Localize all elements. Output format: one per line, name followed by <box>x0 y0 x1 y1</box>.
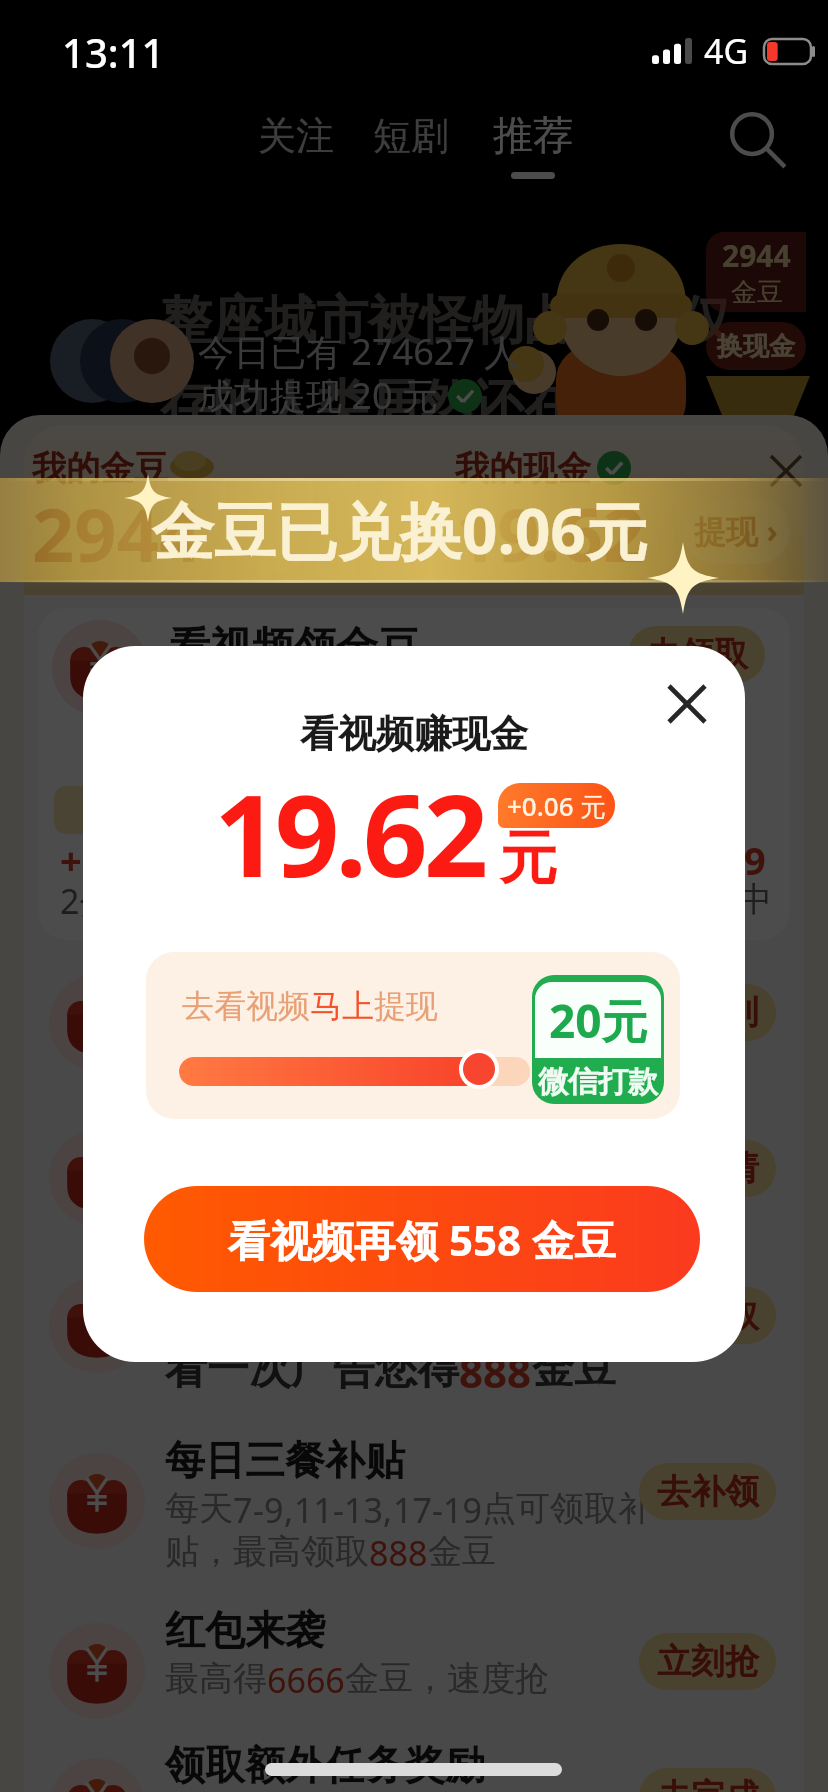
staticText: 13 <box>344 1487 383 1533</box>
staticText: , <box>383 1487 393 1533</box>
staticText: - <box>432 1487 443 1533</box>
staticText: 20元 <box>549 989 648 1052</box>
staticText: 6666 <box>267 1657 345 1703</box>
staticText: 7 <box>233 1487 253 1533</box>
button[interactable]: Close panel <box>754 439 804 503</box>
button[interactable]: 20元 <box>532 975 664 1104</box>
staticText: 金豆 <box>532 1343 616 1396</box>
staticText: 888 <box>459 1343 532 1400</box>
staticText: 2944 <box>722 235 791 276</box>
staticText: 提现 <box>374 986 438 1026</box>
button[interactable]: 去签到 <box>639 984 776 1041</box>
button[interactable]: 推荐 <box>493 110 573 179</box>
staticText: 连续签到可得更多奖励 <box>165 1008 505 1051</box>
button[interactable]: 去完成 <box>639 1768 776 1792</box>
staticText: 19 <box>443 1487 482 1533</box>
button[interactable]: 关注 <box>258 112 334 160</box>
staticText: 19.62 <box>455 483 646 584</box>
staticText: 去邀请 <box>657 1147 759 1190</box>
staticText: 每日三餐补贴 <box>165 1435 405 1485</box>
staticText: 整座城市被怪物占领，仅 <box>160 288 732 354</box>
staticText: 今日已有 274627 人 <box>198 327 521 376</box>
staticText: 贴，最高领取 <box>165 1530 369 1573</box>
staticText: 金豆已兑换0.06元 <box>152 488 648 573</box>
staticText: 短剧 <box>373 112 449 160</box>
staticText: 推荐 <box>493 110 573 160</box>
staticText: 换现金 <box>717 330 795 363</box>
staticText: 888 <box>369 1530 428 1576</box>
staticText: , <box>284 1487 294 1533</box>
staticText: 马上 <box>310 986 374 1026</box>
button[interactable]: 换现金 <box>706 322 806 370</box>
button[interactable]: 看视频再领 558 金豆 <box>144 1186 700 1292</box>
staticText: 2分 <box>60 878 114 924</box>
staticText: 关注 <box>258 112 334 160</box>
staticText: 已领 <box>82 793 138 828</box>
staticText: 立刻抢 <box>657 1640 759 1683</box>
staticText: 每天 <box>165 1487 233 1530</box>
staticText: 微信打款 <box>538 1063 658 1101</box>
staticText: 看视频再领 558 金豆 <box>228 1211 616 1268</box>
staticText: 17 <box>393 1487 432 1533</box>
staticText: 2944 <box>32 483 202 584</box>
staticText: 中 <box>738 878 772 921</box>
staticText: 我的金豆 <box>32 447 168 490</box>
staticText: 领取额外任务奖励 <box>165 1740 485 1790</box>
button[interactable]: 去领取 <box>639 1287 776 1344</box>
staticText: 看一次广告您得 <box>165 1343 459 1396</box>
button[interactable]: 去邀请 <box>639 1140 776 1197</box>
staticText: 成功提现 20 元 <box>198 371 438 420</box>
staticText: 500 <box>437 1164 496 1210</box>
button[interactable]: 去领取 <box>628 626 765 683</box>
staticText: 元 <box>499 822 557 895</box>
staticText: 看视频领金豆 <box>168 622 420 675</box>
staticText: 存的人类居然还在睡觉 <box>160 372 680 438</box>
button[interactable]: Close <box>647 664 727 744</box>
staticText: 去领取 <box>657 1294 759 1337</box>
staticText: 9 <box>744 834 766 886</box>
staticText: 去领取 <box>646 633 748 676</box>
button[interactable]: 立刻抢 <box>639 1633 776 1690</box>
staticText: 9 <box>264 1487 284 1533</box>
staticText: 13:11 <box>62 25 165 79</box>
button[interactable]: Search <box>726 108 788 170</box>
staticText: 每邀请一位好友得 <box>165 1164 437 1207</box>
staticText: 最高得 <box>165 1657 267 1700</box>
staticText: - <box>253 1487 264 1533</box>
staticText: 11 <box>294 1487 333 1533</box>
staticText: +0.06 元 <box>507 788 607 824</box>
button[interactable]: 提现 › <box>683 498 790 564</box>
staticText: +8 <box>60 834 104 886</box>
staticText: - <box>333 1487 344 1533</box>
button[interactable]: 短剧 <box>373 112 449 160</box>
staticText: 看视频赚现金 <box>300 710 528 758</box>
button[interactable]: 去补领 <box>639 1463 776 1520</box>
staticText: 19.62 <box>214 756 485 910</box>
staticText: 去签到 <box>657 991 759 1034</box>
staticText: 点可领取补 <box>482 1487 652 1530</box>
staticText: 金豆 <box>731 276 783 309</box>
staticText: 我的现金 <box>455 447 591 490</box>
staticText: 4G <box>704 28 749 74</box>
staticText: 去完成 <box>657 1775 759 1792</box>
staticText: 去看视频 <box>182 986 310 1026</box>
staticText: 金豆 <box>428 1530 496 1573</box>
staticText: 提现 › <box>694 509 779 553</box>
staticText: 金豆 <box>496 1164 564 1207</box>
staticText: 红包来袭 <box>165 1605 325 1655</box>
staticText: 邀请好友赚金豆 <box>165 1112 445 1162</box>
staticText: 去补领 <box>657 1470 759 1513</box>
staticText: 金豆，速度抢 <box>345 1657 549 1700</box>
staticText: 每日签到领金豆 <box>165 956 445 1006</box>
